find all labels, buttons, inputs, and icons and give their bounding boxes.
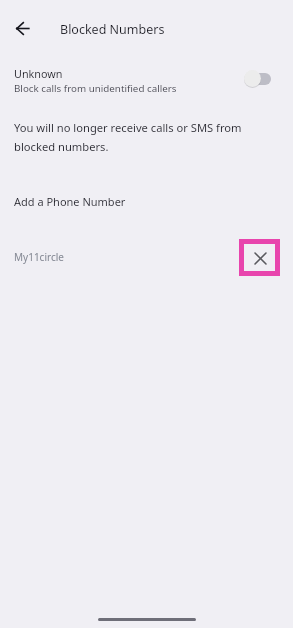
button[interactable]: Navigate up (0, 6, 45, 51)
staticText: You will no longer receive calls or SMS … (14, 120, 264, 154)
staticText: Unknown (14, 66, 63, 81)
staticText: Add a Phone Number (14, 194, 126, 209)
button[interactable]: Block unknown callers, off (240, 65, 278, 93)
staticText: Blocked Numbers (60, 21, 165, 38)
button[interactable]: Remove My11circle (244, 244, 275, 271)
staticText: Block calls from unidentified callers (14, 82, 177, 95)
staticText: My11circle (14, 250, 64, 264)
button[interactable]: Add a Phone Number (0, 188, 293, 214)
button[interactable] (0, 59, 293, 99)
button[interactable] (0, 238, 293, 277)
